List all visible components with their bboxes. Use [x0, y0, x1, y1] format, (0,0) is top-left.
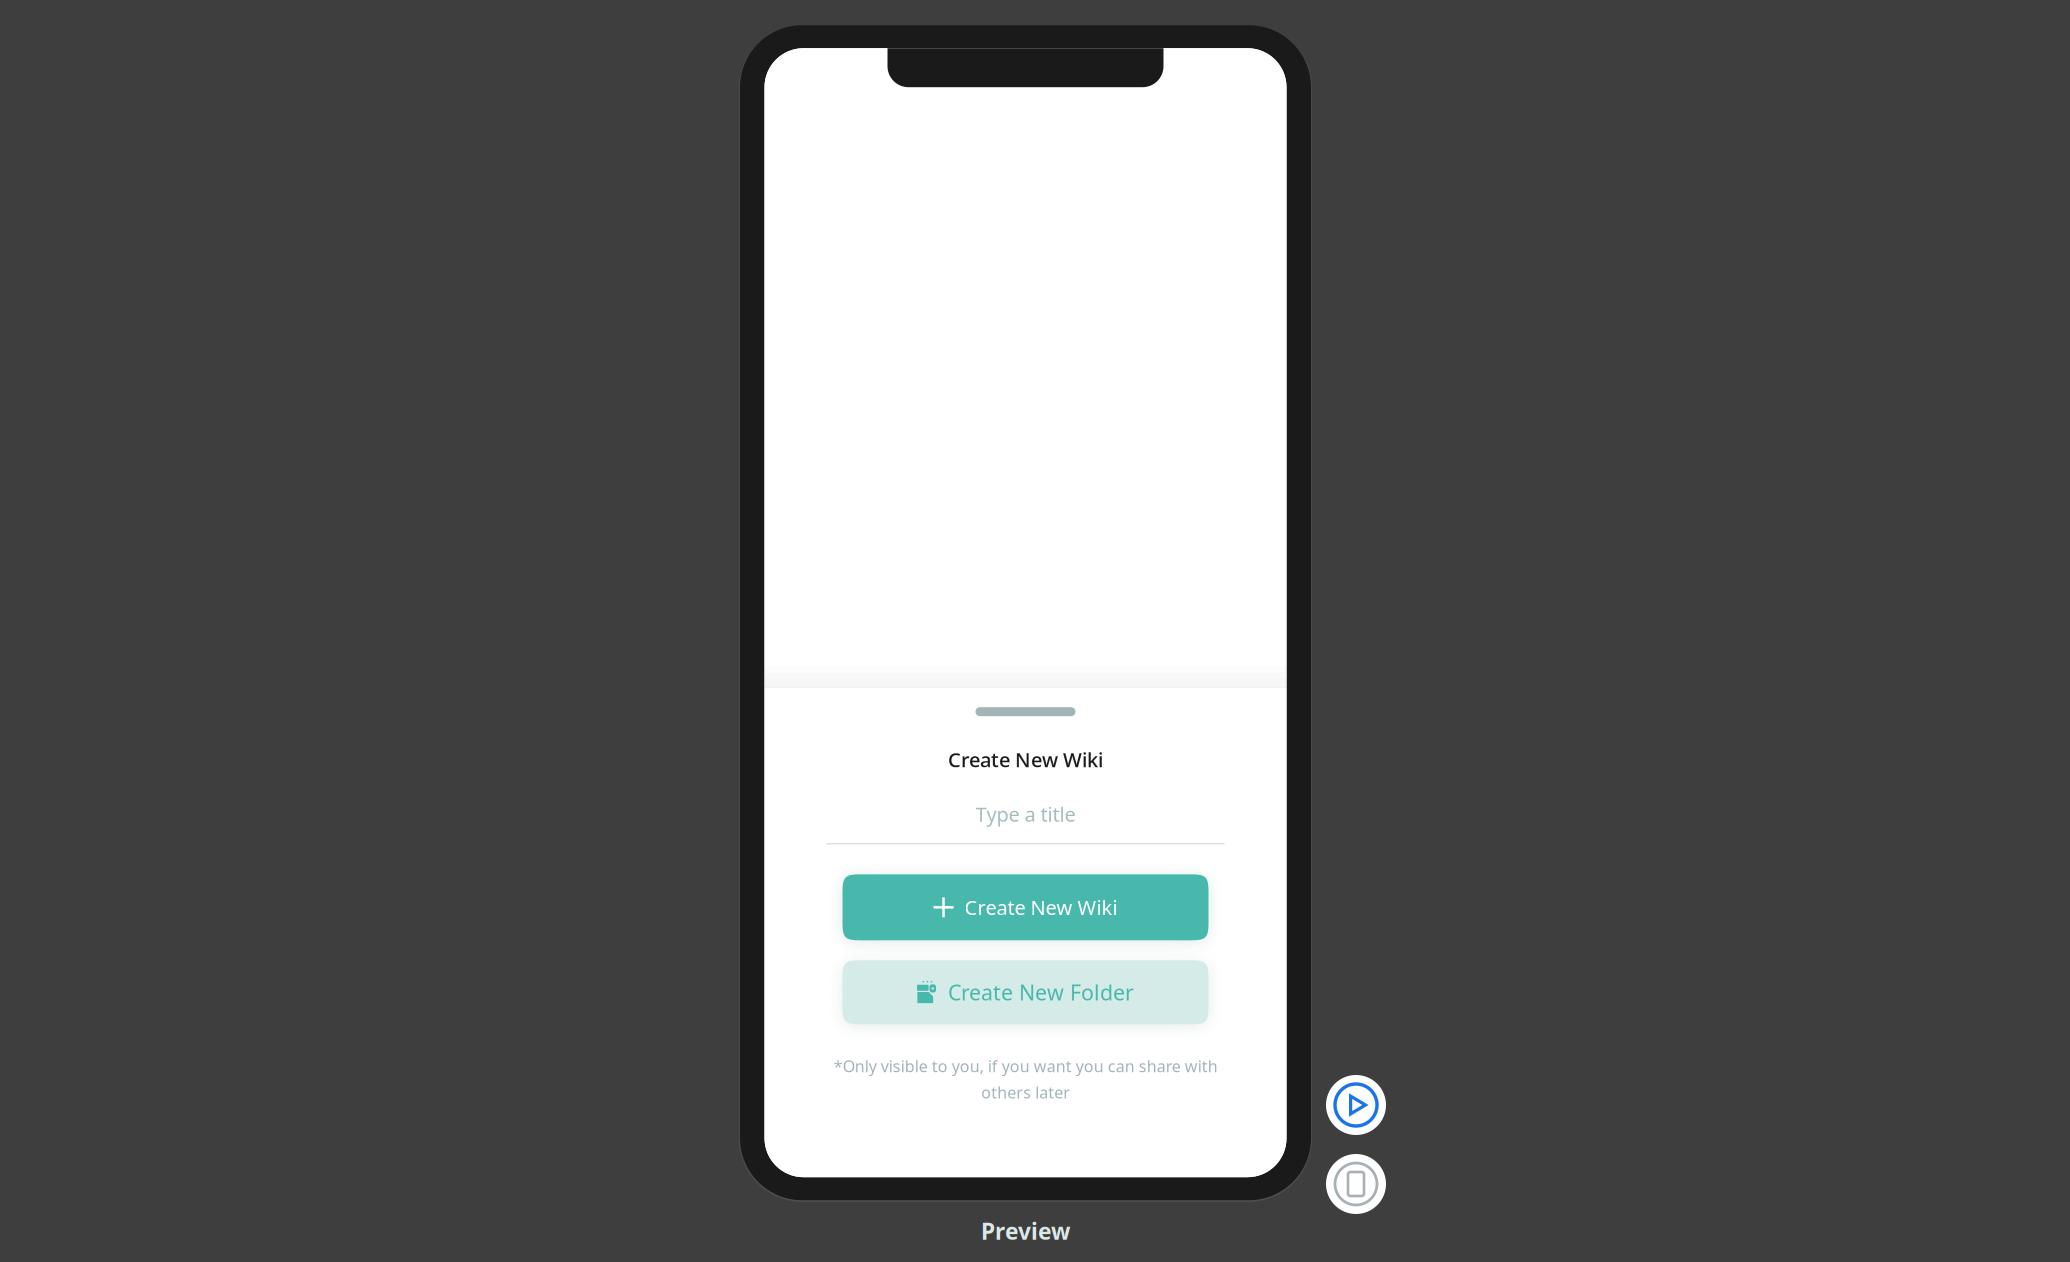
staticText: Preview	[981, 1216, 1070, 1246]
button[interactable]: Type a title	[826, 801, 1224, 844]
button[interactable]: Run live preview	[1326, 1075, 1386, 1135]
staticText: *Only visible to you, if you want you ca…	[833, 1055, 1217, 1076]
button[interactable]: Create New Wiki	[842, 874, 1208, 940]
staticText: Type a title	[975, 801, 1075, 827]
staticText: Create New Wiki	[948, 746, 1103, 773]
staticText: others later	[981, 1082, 1070, 1103]
button[interactable]: Preview on device	[1326, 1154, 1386, 1214]
staticText: Create New Wiki	[964, 894, 1117, 921]
button[interactable]: Create New Folder	[842, 960, 1208, 1024]
staticText: Create New Folder	[948, 978, 1134, 1006]
